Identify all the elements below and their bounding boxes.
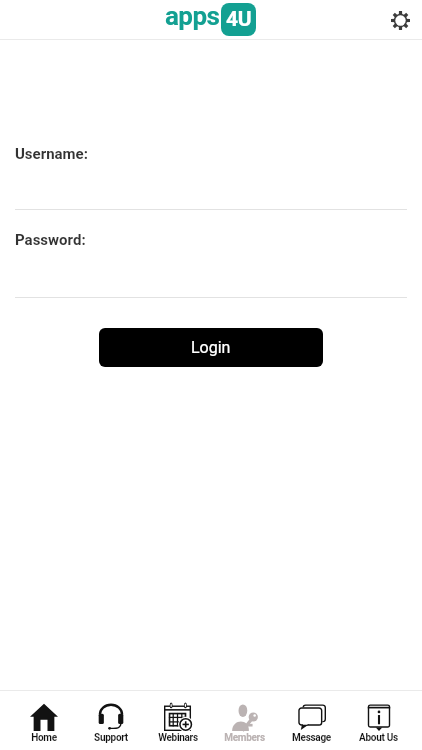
staticText: apps xyxy=(165,1,220,31)
button[interactable]: Support xyxy=(77,691,144,750)
button[interactable]: Settings xyxy=(385,5,415,35)
button[interactable]: Home xyxy=(10,691,77,750)
staticText: Message xyxy=(292,732,331,744)
staticText: Members xyxy=(224,732,265,744)
button[interactable]: Message xyxy=(278,691,345,750)
button[interactable]: Webinars xyxy=(144,691,211,750)
staticText: Login xyxy=(191,338,231,357)
button[interactable]: About Us xyxy=(345,691,412,750)
staticText: 4U xyxy=(226,7,252,32)
staticText: Username: xyxy=(15,145,88,163)
staticText: Home xyxy=(31,732,57,744)
staticText: Webinars xyxy=(158,732,198,744)
staticText: About Us xyxy=(359,732,398,744)
button[interactable]: Members xyxy=(211,691,278,750)
staticText: Support xyxy=(94,732,128,744)
button[interactable]: Login xyxy=(99,328,323,367)
staticText: Password: xyxy=(15,231,86,249)
